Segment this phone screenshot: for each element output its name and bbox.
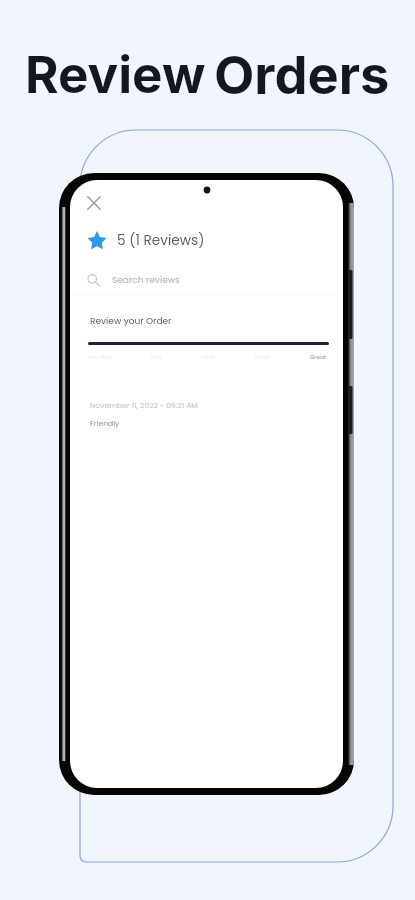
staticText: November 11, 2022 - 09:21 AM (90, 400, 198, 411)
staticText: Bad (151, 353, 162, 361)
staticText: Very Bad (87, 353, 112, 361)
staticText: Okay (201, 353, 216, 361)
staticText: Orders (214, 43, 390, 106)
staticText: Review (25, 43, 206, 105)
button[interactable]: Search reviews (70, 268, 343, 292)
staticText: Review your Order (90, 315, 172, 328)
staticText: Friendly (90, 418, 120, 429)
staticText: 5 (1 Reviews) (117, 231, 205, 250)
staticText: Good (255, 353, 271, 361)
staticText: Search reviews (112, 274, 180, 287)
staticText: Great (310, 353, 326, 361)
button[interactable]: Close (83, 192, 105, 214)
